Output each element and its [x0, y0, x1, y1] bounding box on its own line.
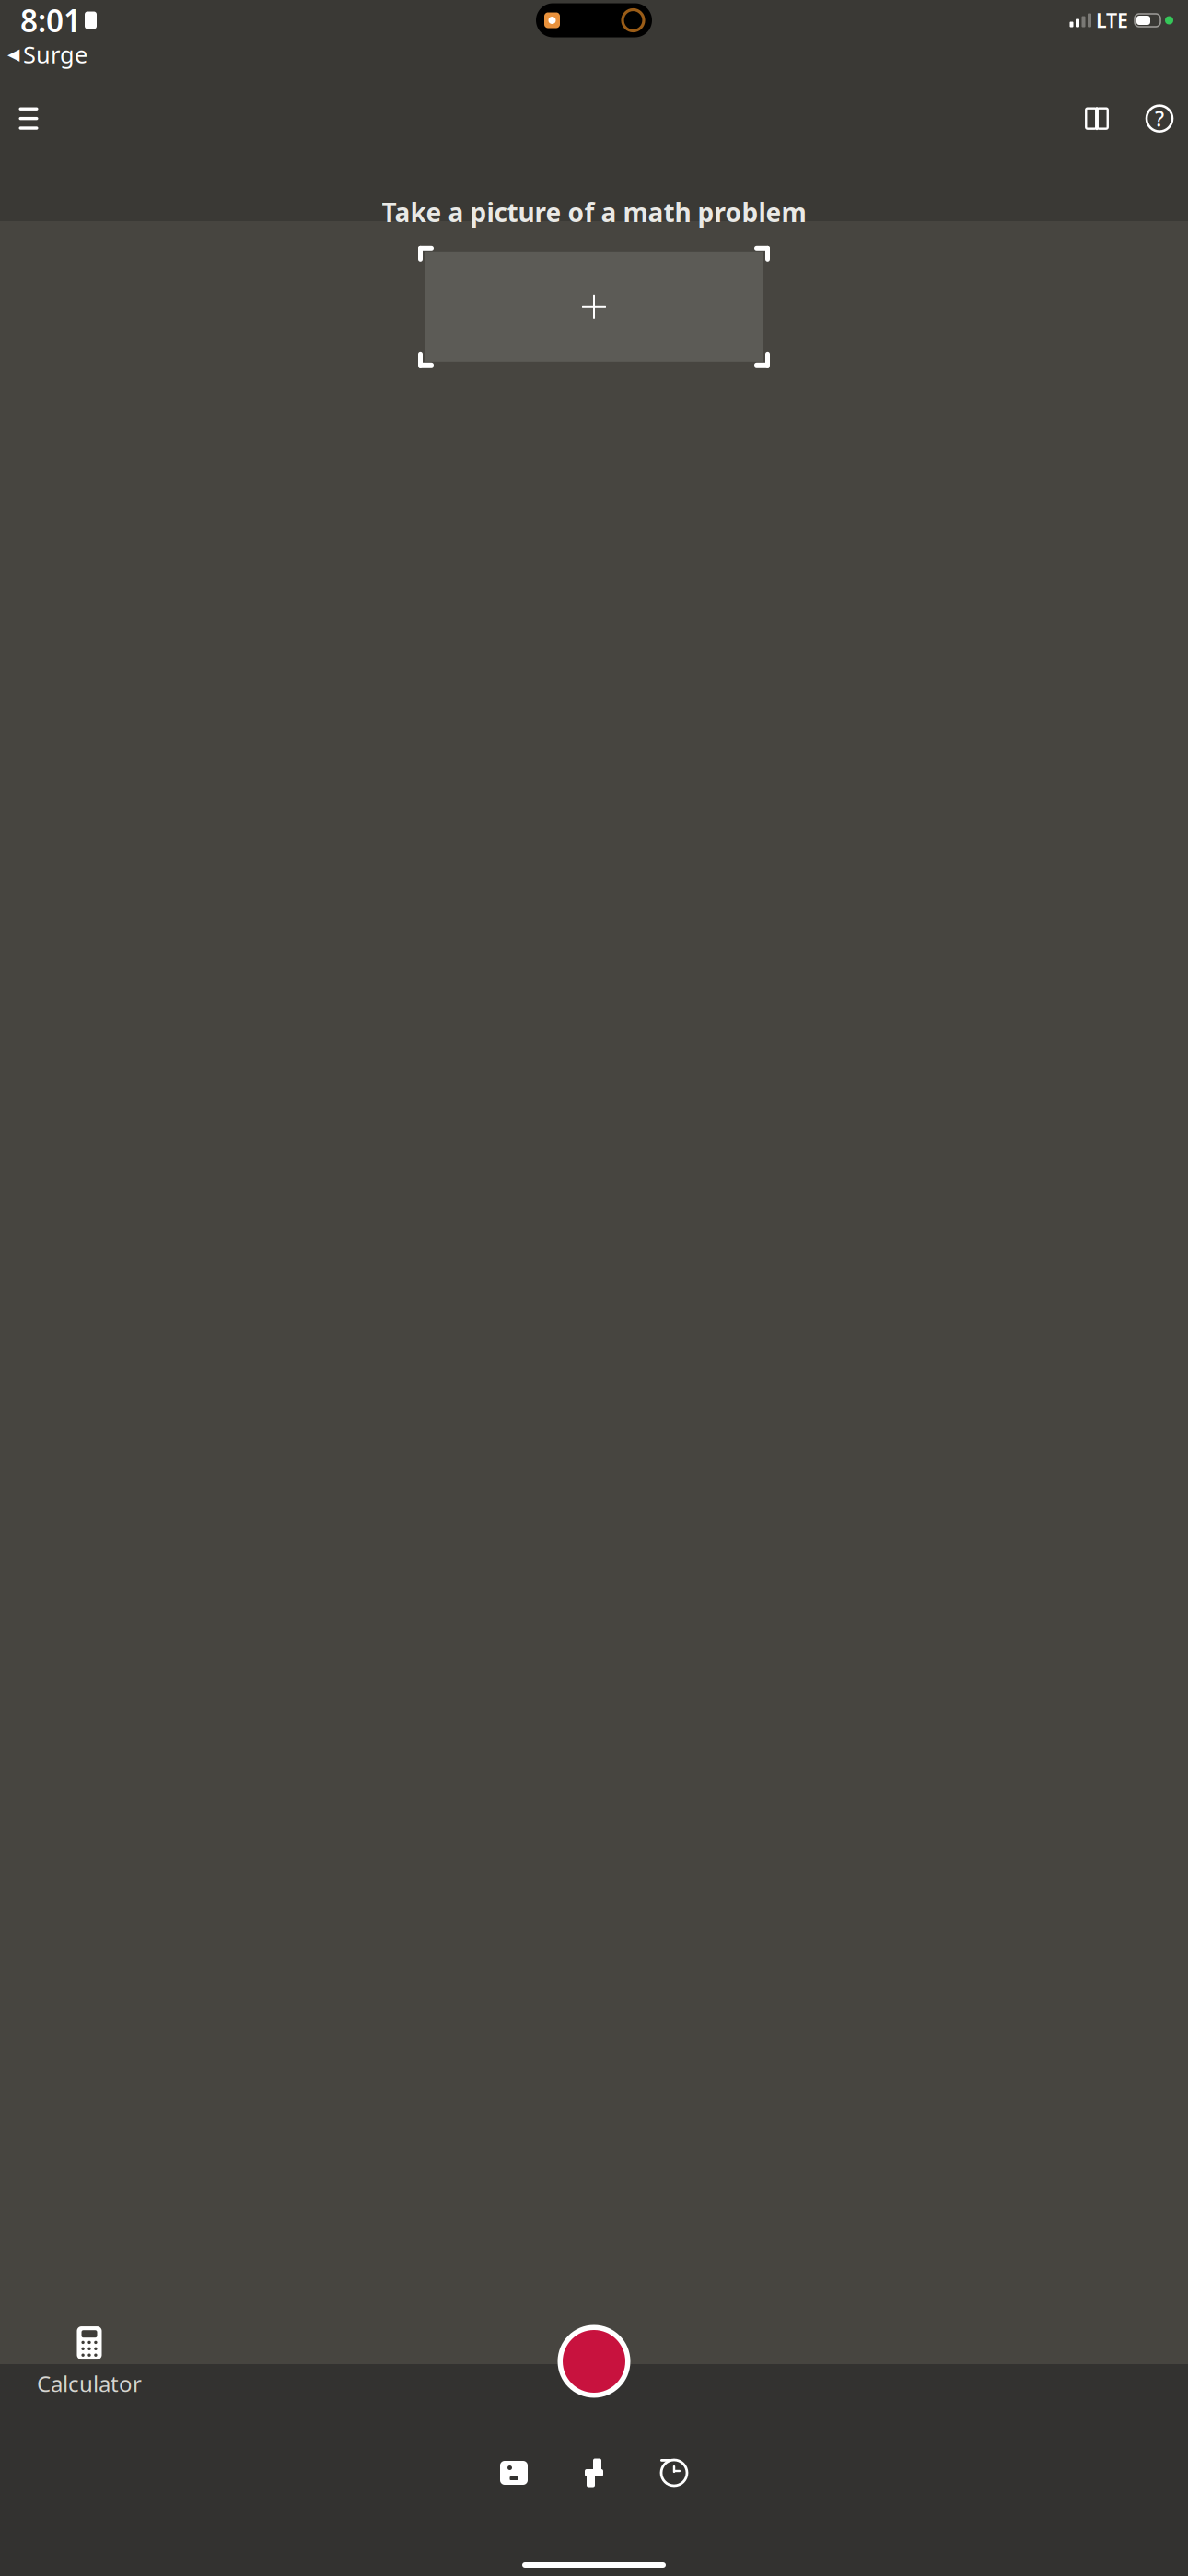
staticText: Calculator: [37, 2369, 142, 2398]
staticText: 8:01: [20, 0, 81, 41]
button[interactable]: Help: [1136, 95, 1182, 142]
button[interactable]: History: [647, 2446, 701, 2500]
button[interactable]: Calculator: [28, 2319, 151, 2404]
button[interactable]: Photo library: [487, 2446, 541, 2500]
staticText: Take a picture of a math problem: [382, 195, 806, 229]
button[interactable]: Flash: [567, 2444, 621, 2501]
staticText: Surge: [23, 39, 87, 70]
staticText: ?: [1155, 105, 1164, 132]
staticText: LTE: [1096, 7, 1128, 33]
button[interactable]: Textbook solutions: [1074, 95, 1120, 142]
button[interactable]: Take picture: [558, 2325, 630, 2398]
button[interactable]: Menu: [6, 95, 52, 142]
staticText: ◀: [7, 45, 19, 63]
